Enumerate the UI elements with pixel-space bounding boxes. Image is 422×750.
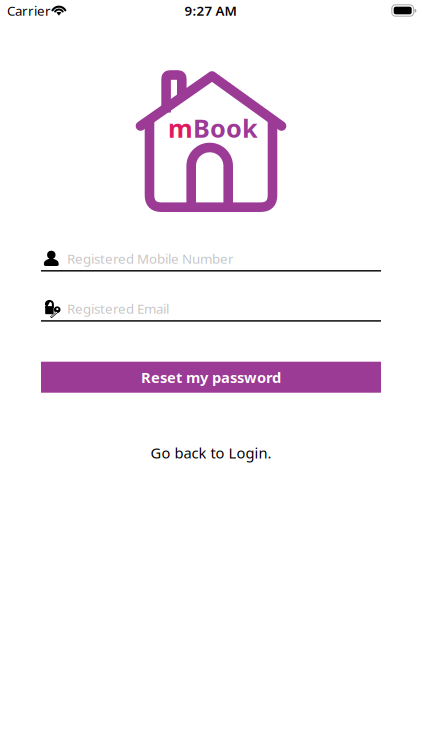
staticText: m xyxy=(168,111,193,145)
staticText: Book xyxy=(193,111,258,145)
staticText: Reset my password xyxy=(141,367,281,387)
staticText: Carrier xyxy=(7,2,51,19)
staticText: 9:27 AM xyxy=(184,2,236,19)
staticText: Registered Mobile Number xyxy=(67,250,234,267)
button[interactable]: Reset my password xyxy=(41,362,381,393)
staticText: Go back to Login. xyxy=(150,443,271,462)
staticText: Registered Email xyxy=(67,300,169,317)
button[interactable]: Go back to Login. xyxy=(41,443,381,463)
